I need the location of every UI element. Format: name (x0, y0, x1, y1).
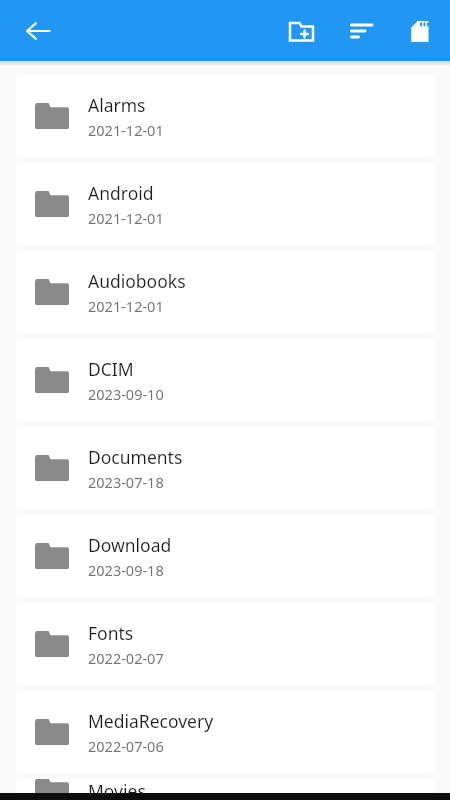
staticText: Movies (88, 779, 146, 800)
staticText: 2023-09-18 (88, 560, 164, 580)
button[interactable]: MediaRecovery (16, 691, 434, 773)
button[interactable]: New folder (278, 8, 324, 54)
staticText: Download (88, 533, 172, 557)
staticText: 2022-07-06 (88, 736, 164, 756)
button[interactable]: Back (17, 10, 59, 52)
button[interactable]: DCIM (16, 339, 434, 421)
staticText: 2021-12-01 (88, 120, 164, 140)
button[interactable]: Android (16, 163, 434, 245)
button[interactable]: Audiobooks (16, 251, 434, 333)
staticText: 2023-09-10 (88, 384, 164, 404)
button[interactable]: Download (16, 515, 434, 597)
staticText: 2023-07-18 (88, 472, 164, 492)
staticText: 2021-12-01 (88, 208, 164, 228)
staticText: 2022-02-07 (88, 648, 164, 668)
staticText: DCIM (88, 357, 134, 381)
staticText: 2021-12-01 (88, 296, 164, 316)
staticText: Alarms (88, 93, 146, 117)
staticText: Fonts (88, 621, 134, 645)
button[interactable]: Sort (338, 8, 384, 54)
button[interactable]: Movies (16, 779, 434, 800)
staticText: Documents (88, 445, 183, 469)
staticText: MediaRecovery (88, 709, 214, 733)
button[interactable]: Documents (16, 427, 434, 509)
button[interactable]: Alarms (16, 75, 434, 157)
staticText: Audiobooks (88, 269, 186, 293)
button[interactable]: SD card storage (396, 8, 442, 54)
staticText: Android (88, 181, 154, 205)
button[interactable]: Fonts (16, 603, 434, 685)
